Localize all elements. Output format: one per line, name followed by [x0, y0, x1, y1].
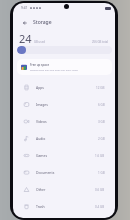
staticText: 9:41 — [21, 6, 28, 10]
staticText: Games — [36, 153, 48, 158]
staticText: Free up space — [30, 63, 50, 67]
staticText: 256 GB total — [92, 40, 109, 44]
button[interactable]: Trash — [13, 198, 115, 215]
staticText: 0.4 GB — [95, 205, 105, 209]
button[interactable]: Documents — [13, 164, 115, 181]
staticText: Documents — [36, 170, 55, 175]
button[interactable]: Free up space — [17, 59, 112, 75]
button[interactable]: Apps — [13, 79, 115, 96]
button[interactable]: Games — [13, 147, 115, 164]
staticText: 24 — [19, 31, 32, 46]
staticText: Other — [36, 187, 46, 192]
staticText: 0.6 GB — [95, 188, 105, 192]
staticText: 6 GB — [98, 103, 105, 107]
button[interactable]: Back — [20, 18, 30, 28]
staticText: 1 GB — [98, 171, 105, 175]
staticText: Audio — [36, 136, 46, 141]
staticText: 3 GB — [98, 120, 105, 124]
staticText: Review large files and apps you don't ne… — [30, 68, 78, 71]
button[interactable]: Other — [13, 181, 115, 198]
staticText: GB used — [34, 40, 45, 44]
button[interactable]: Audio — [13, 130, 115, 147]
staticText: 12 GB — [96, 86, 105, 90]
staticText: 2 GB — [98, 137, 105, 141]
button[interactable]: Images — [13, 96, 115, 113]
button[interactable]: Videos — [13, 113, 115, 130]
staticText: 1.6 GB — [95, 154, 105, 158]
staticText: Images — [36, 102, 48, 107]
staticText: Trash — [36, 204, 45, 209]
staticText: Videos — [36, 119, 47, 124]
staticText: Storage — [33, 19, 52, 26]
staticText: Apps — [36, 85, 44, 90]
